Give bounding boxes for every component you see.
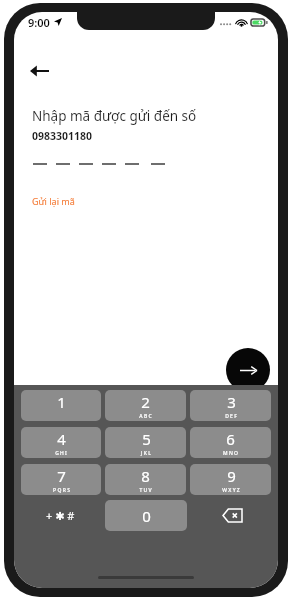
button[interactable]: 3 bbox=[190, 390, 271, 421]
staticText: D E F bbox=[225, 413, 237, 420]
staticText: 8 bbox=[141, 466, 150, 486]
button[interactable]: + ✱ # bbox=[19, 500, 101, 531]
staticText: G H I bbox=[55, 450, 67, 457]
staticText: 1 bbox=[57, 392, 66, 412]
button[interactable]: 1 bbox=[21, 390, 101, 421]
staticText: 0 bbox=[142, 506, 151, 526]
staticText: A B C bbox=[139, 413, 152, 420]
staticText: 7 bbox=[57, 466, 66, 486]
staticText: 9 bbox=[227, 466, 236, 486]
staticText: 6 bbox=[226, 429, 235, 449]
button[interactable]: 7 bbox=[21, 464, 101, 495]
staticText: 5 bbox=[142, 429, 151, 449]
staticText: 9:00 bbox=[28, 15, 50, 30]
staticText: Gửi lại mã bbox=[32, 195, 75, 207]
staticText: + ✱ # bbox=[46, 508, 75, 523]
staticText: Nhập mã được gửi đến số bbox=[32, 107, 197, 125]
staticText: 2 bbox=[141, 392, 150, 412]
button[interactable]: Backspace bbox=[191, 500, 273, 531]
staticText: J K L bbox=[141, 450, 151, 457]
button[interactable]: 0 bbox=[105, 500, 187, 531]
button[interactable]: Gửi lại mã bbox=[32, 193, 75, 209]
button[interactable]: Back bbox=[22, 54, 56, 88]
staticText: T U V bbox=[139, 487, 152, 494]
staticText: W X Y Z bbox=[222, 487, 240, 494]
button[interactable]: 2 bbox=[105, 390, 186, 421]
staticText: M N O bbox=[223, 450, 238, 457]
staticText: P Q R S bbox=[53, 487, 70, 494]
button[interactable]: 9 bbox=[190, 464, 271, 495]
staticText: 4 bbox=[57, 429, 66, 449]
staticText: 0983301180 bbox=[32, 129, 93, 143]
button[interactable]: 4 bbox=[21, 427, 101, 458]
button[interactable]: 5 bbox=[105, 427, 186, 458]
staticText: 3 bbox=[227, 392, 236, 412]
button[interactable]: 6 bbox=[190, 427, 271, 458]
button[interactable]: Continue bbox=[226, 348, 270, 392]
button[interactable]: 8 bbox=[105, 464, 186, 495]
